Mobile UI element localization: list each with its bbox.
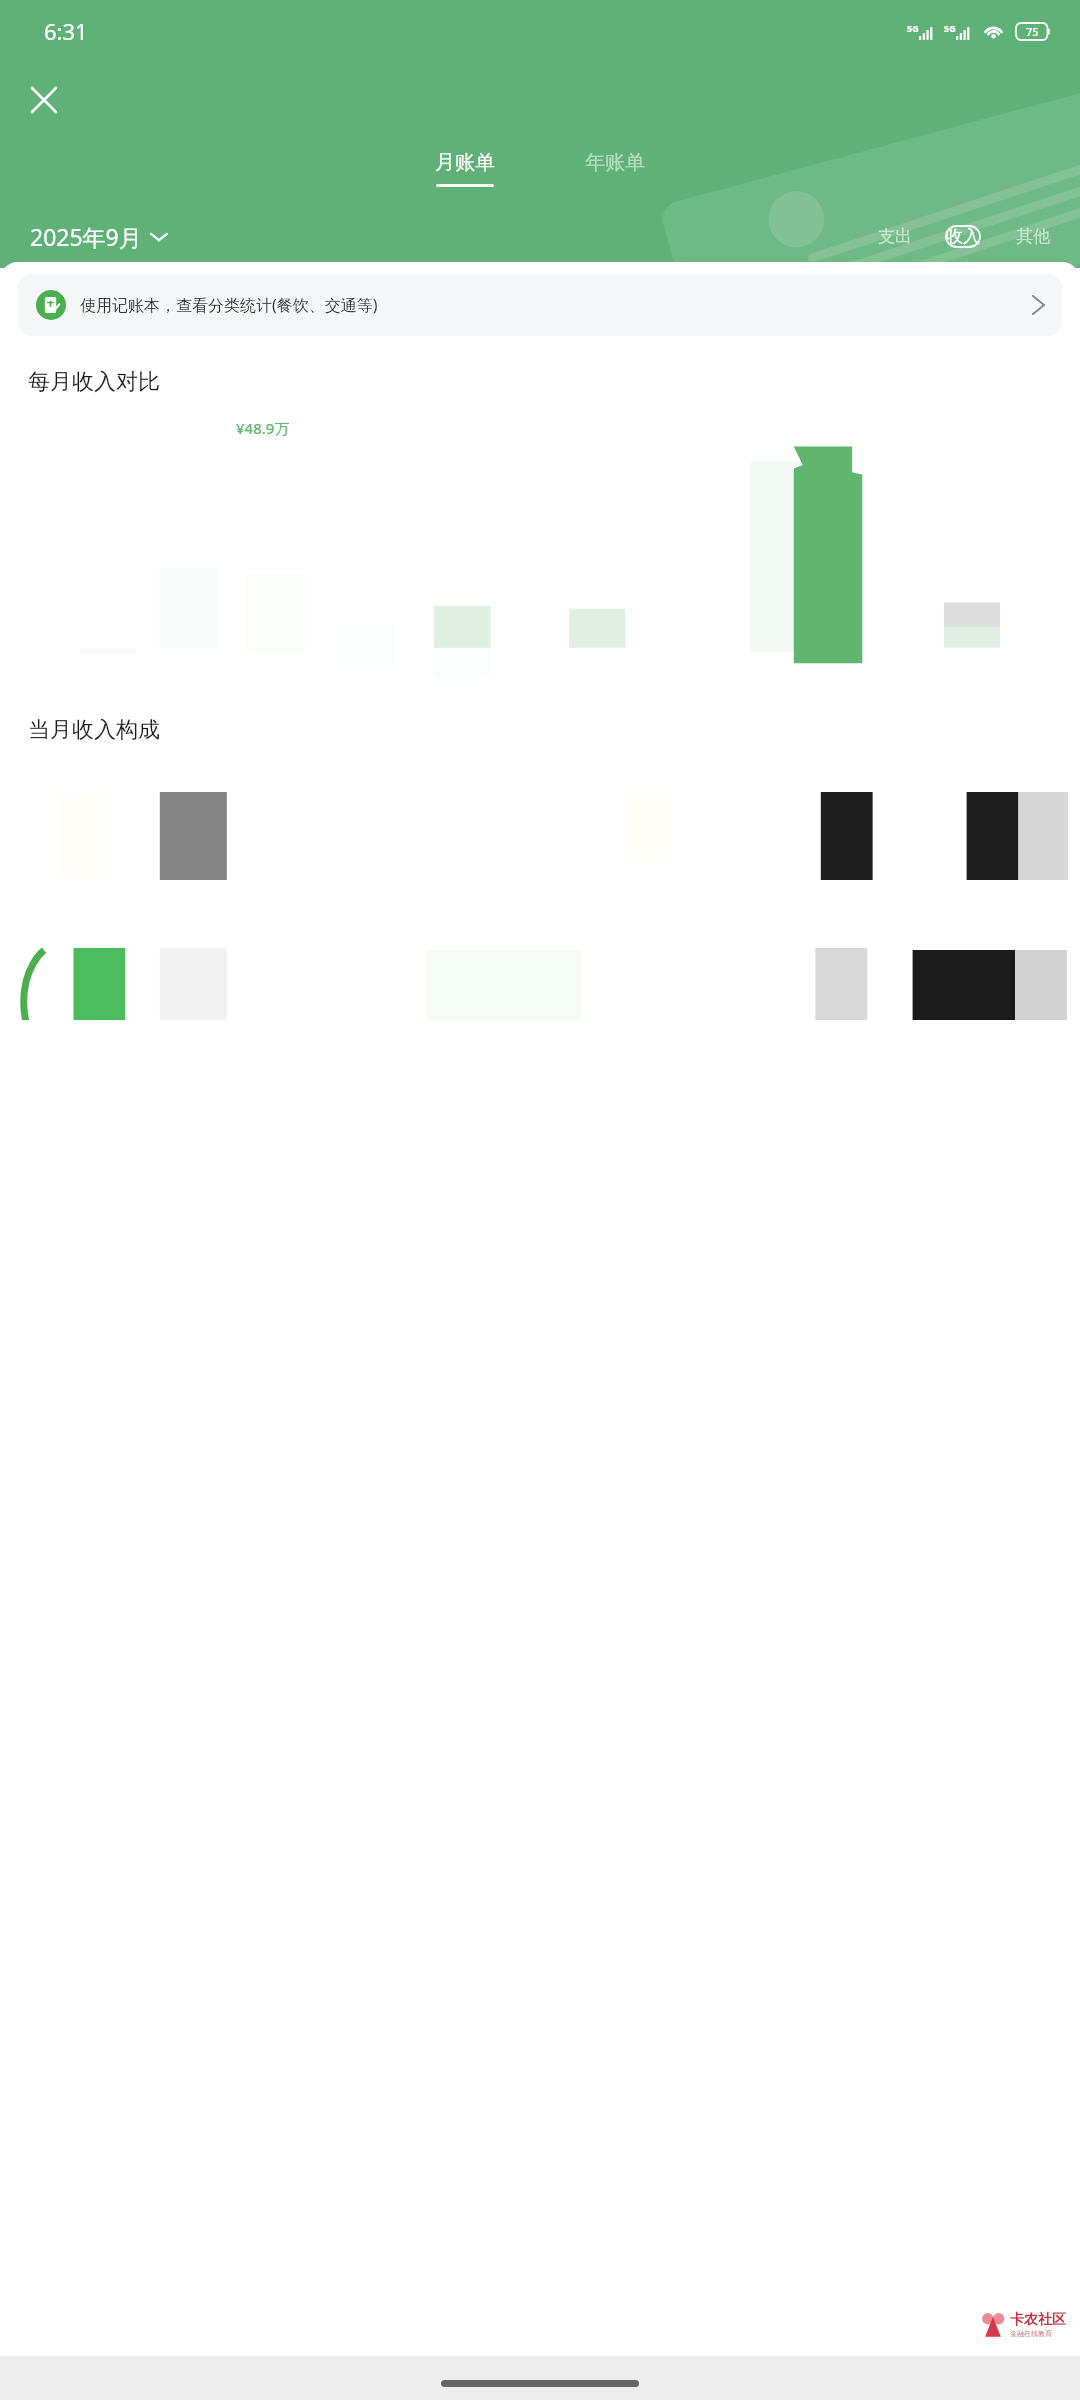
staticText: 75 xyxy=(1026,24,1039,39)
staticText: 月账单 xyxy=(435,150,495,175)
staticText: 5G xyxy=(944,22,956,34)
staticText: 每月收入对比 xyxy=(28,368,160,396)
staticText: 使用记账本，查看分类统计(餐饮、交通等) xyxy=(80,294,1033,316)
staticText: ¥48.9万 xyxy=(236,418,290,438)
button[interactable]: 收入 xyxy=(928,219,998,254)
staticText: 其他 xyxy=(1016,226,1050,247)
button[interactable]: 其他 xyxy=(1012,219,1054,254)
staticText: 收入 xyxy=(946,226,980,247)
staticText: 2025年9月 xyxy=(30,221,142,252)
staticText: 年账单 xyxy=(585,150,645,175)
staticText: 金融在线教育 xyxy=(1010,2329,1052,2338)
staticText: 6:31 xyxy=(44,16,88,46)
button[interactable]: Close xyxy=(18,74,70,126)
button[interactable]: 年账单 xyxy=(579,148,651,189)
staticText: 当月收入构成 xyxy=(28,716,160,744)
staticText: 卡农社区 xyxy=(1010,2311,1066,2329)
button[interactable]: 月账单 xyxy=(429,148,501,189)
button[interactable]: 2025年9月 xyxy=(30,217,167,256)
staticText: 5G xyxy=(907,22,919,34)
button[interactable]: 使用记账本，查看分类统计(餐饮、交通等) xyxy=(18,274,1062,336)
button[interactable]: 支出 xyxy=(874,219,916,254)
staticText: 支出 xyxy=(878,226,912,247)
